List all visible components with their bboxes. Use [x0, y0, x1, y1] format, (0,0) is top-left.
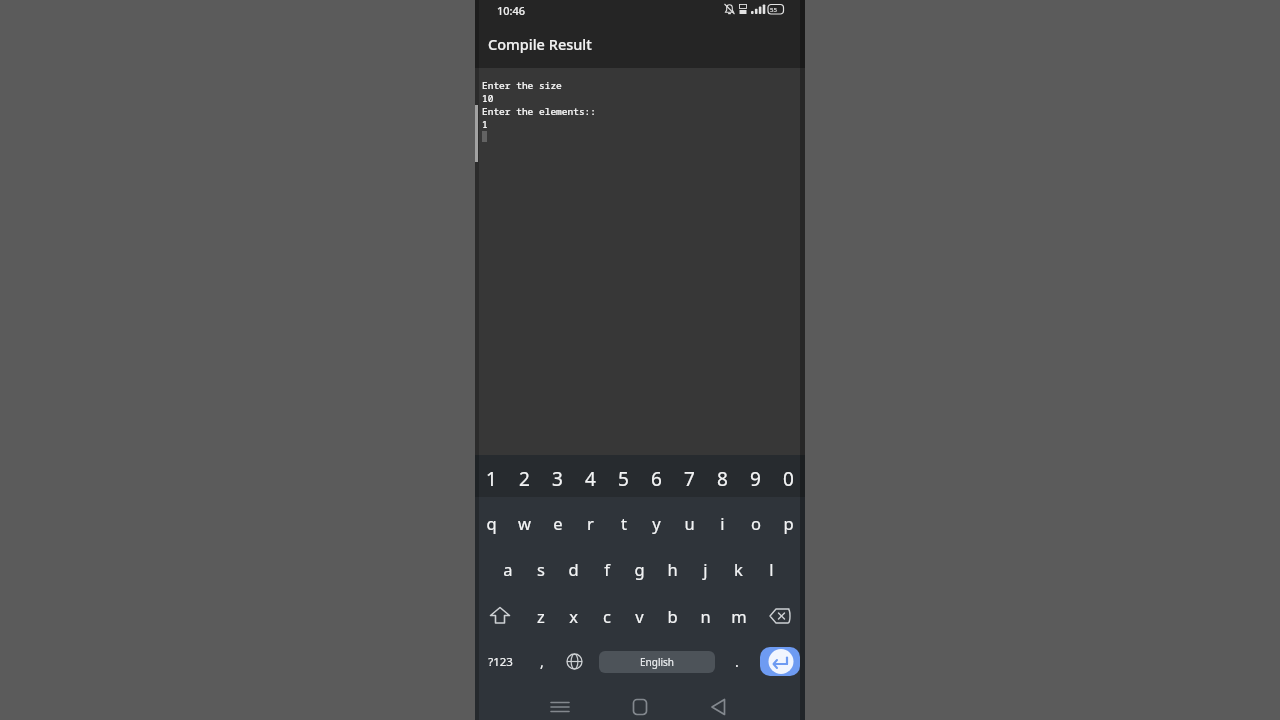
button[interactable]: w [508, 500, 541, 546]
button[interactable]: h [656, 546, 689, 592]
staticText: i [720, 512, 725, 534]
staticText: Compile Result [488, 34, 592, 54]
staticText: u [684, 512, 695, 534]
button[interactable]: c [590, 593, 623, 639]
staticText: 55 [770, 6, 777, 14]
staticText: m [731, 605, 747, 627]
button[interactable]: o [739, 500, 772, 546]
button[interactable]: d [557, 546, 590, 592]
staticText: 6 [651, 466, 662, 492]
staticText: w [518, 512, 531, 534]
button[interactable]: m [722, 593, 755, 639]
button[interactable] [755, 593, 805, 639]
button[interactable]: z [525, 593, 557, 639]
button[interactable]: y [640, 500, 673, 546]
button[interactable]: b [656, 593, 689, 639]
staticText: s [537, 558, 545, 580]
button[interactable]: t [607, 500, 640, 546]
button[interactable]: a [491, 546, 524, 592]
staticText: , [540, 652, 544, 671]
staticText: h [667, 558, 678, 580]
button[interactable] [585, 690, 695, 720]
button[interactable]: , [525, 639, 558, 684]
button[interactable]: 9 [739, 458, 772, 500]
staticText: x [569, 605, 578, 627]
button[interactable]: q [475, 500, 508, 546]
button[interactable]: j [689, 546, 722, 592]
staticText: f [604, 558, 610, 580]
staticText: English [640, 655, 675, 669]
staticText: t [621, 512, 627, 534]
button[interactable]: x [557, 593, 590, 639]
button[interactable]: 7 [673, 458, 706, 500]
button[interactable]: e [541, 500, 574, 546]
staticText: e [553, 512, 563, 534]
staticText: y [652, 512, 661, 534]
button[interactable] [760, 647, 800, 676]
button[interactable]: n [689, 593, 722, 639]
staticText: j [703, 558, 708, 580]
button[interactable]: i [706, 500, 739, 546]
button[interactable]: f [590, 546, 623, 592]
button[interactable]: 5 [607, 458, 640, 500]
staticText: 4 [585, 466, 596, 492]
button[interactable] [558, 639, 590, 684]
staticText: o [751, 512, 761, 534]
button[interactable]: 1 [475, 458, 508, 500]
button[interactable]: s [524, 546, 557, 592]
button[interactable]: v [623, 593, 656, 639]
button[interactable]: u [673, 500, 706, 546]
staticText: z [537, 605, 545, 627]
staticText: . [735, 652, 739, 671]
staticText: r [587, 512, 594, 534]
staticText: g [634, 558, 645, 580]
button[interactable]: l [755, 546, 788, 592]
button[interactable]: p [772, 500, 805, 546]
button[interactable]: k [722, 546, 755, 592]
staticText: 5 [618, 466, 629, 492]
staticText: p [783, 512, 794, 534]
staticText: a [503, 558, 513, 580]
staticText: 7 [684, 466, 695, 492]
staticText: 9 [750, 466, 761, 492]
staticText: v [635, 605, 644, 627]
staticText: 1 [486, 466, 497, 492]
staticText: ?123 [488, 654, 513, 670]
button[interactable]: Compile Result [475, 20, 805, 68]
button[interactable]: ?123 [475, 639, 525, 684]
staticText: Enter the size 10 Enter the elements:: 1 [482, 79, 597, 131]
button[interactable]: 2 [508, 458, 541, 500]
button[interactable]: r [574, 500, 607, 546]
staticText: q [486, 512, 497, 534]
button[interactable]: . [720, 639, 754, 684]
button[interactable]: English [599, 651, 715, 673]
staticText: b [667, 605, 678, 627]
button[interactable] [475, 690, 585, 720]
staticText: 3 [552, 466, 563, 492]
button[interactable]: g [623, 546, 656, 592]
button[interactable]: 3 [541, 458, 574, 500]
staticText: 0 [783, 466, 794, 492]
staticText: d [568, 558, 579, 580]
staticText: 10:46 [497, 3, 526, 18]
button[interactable]: 6 [640, 458, 673, 500]
staticText: 8 [717, 466, 728, 492]
staticText: n [700, 605, 711, 627]
button[interactable] [475, 593, 525, 639]
button[interactable]: 8 [706, 458, 739, 500]
staticText: l [769, 558, 774, 580]
staticText: k [734, 558, 743, 580]
button[interactable] [695, 690, 805, 720]
staticText: c [603, 605, 611, 627]
button[interactable]: 4 [574, 458, 607, 500]
staticText: 2 [519, 466, 530, 492]
button[interactable]: 0 [772, 458, 805, 500]
